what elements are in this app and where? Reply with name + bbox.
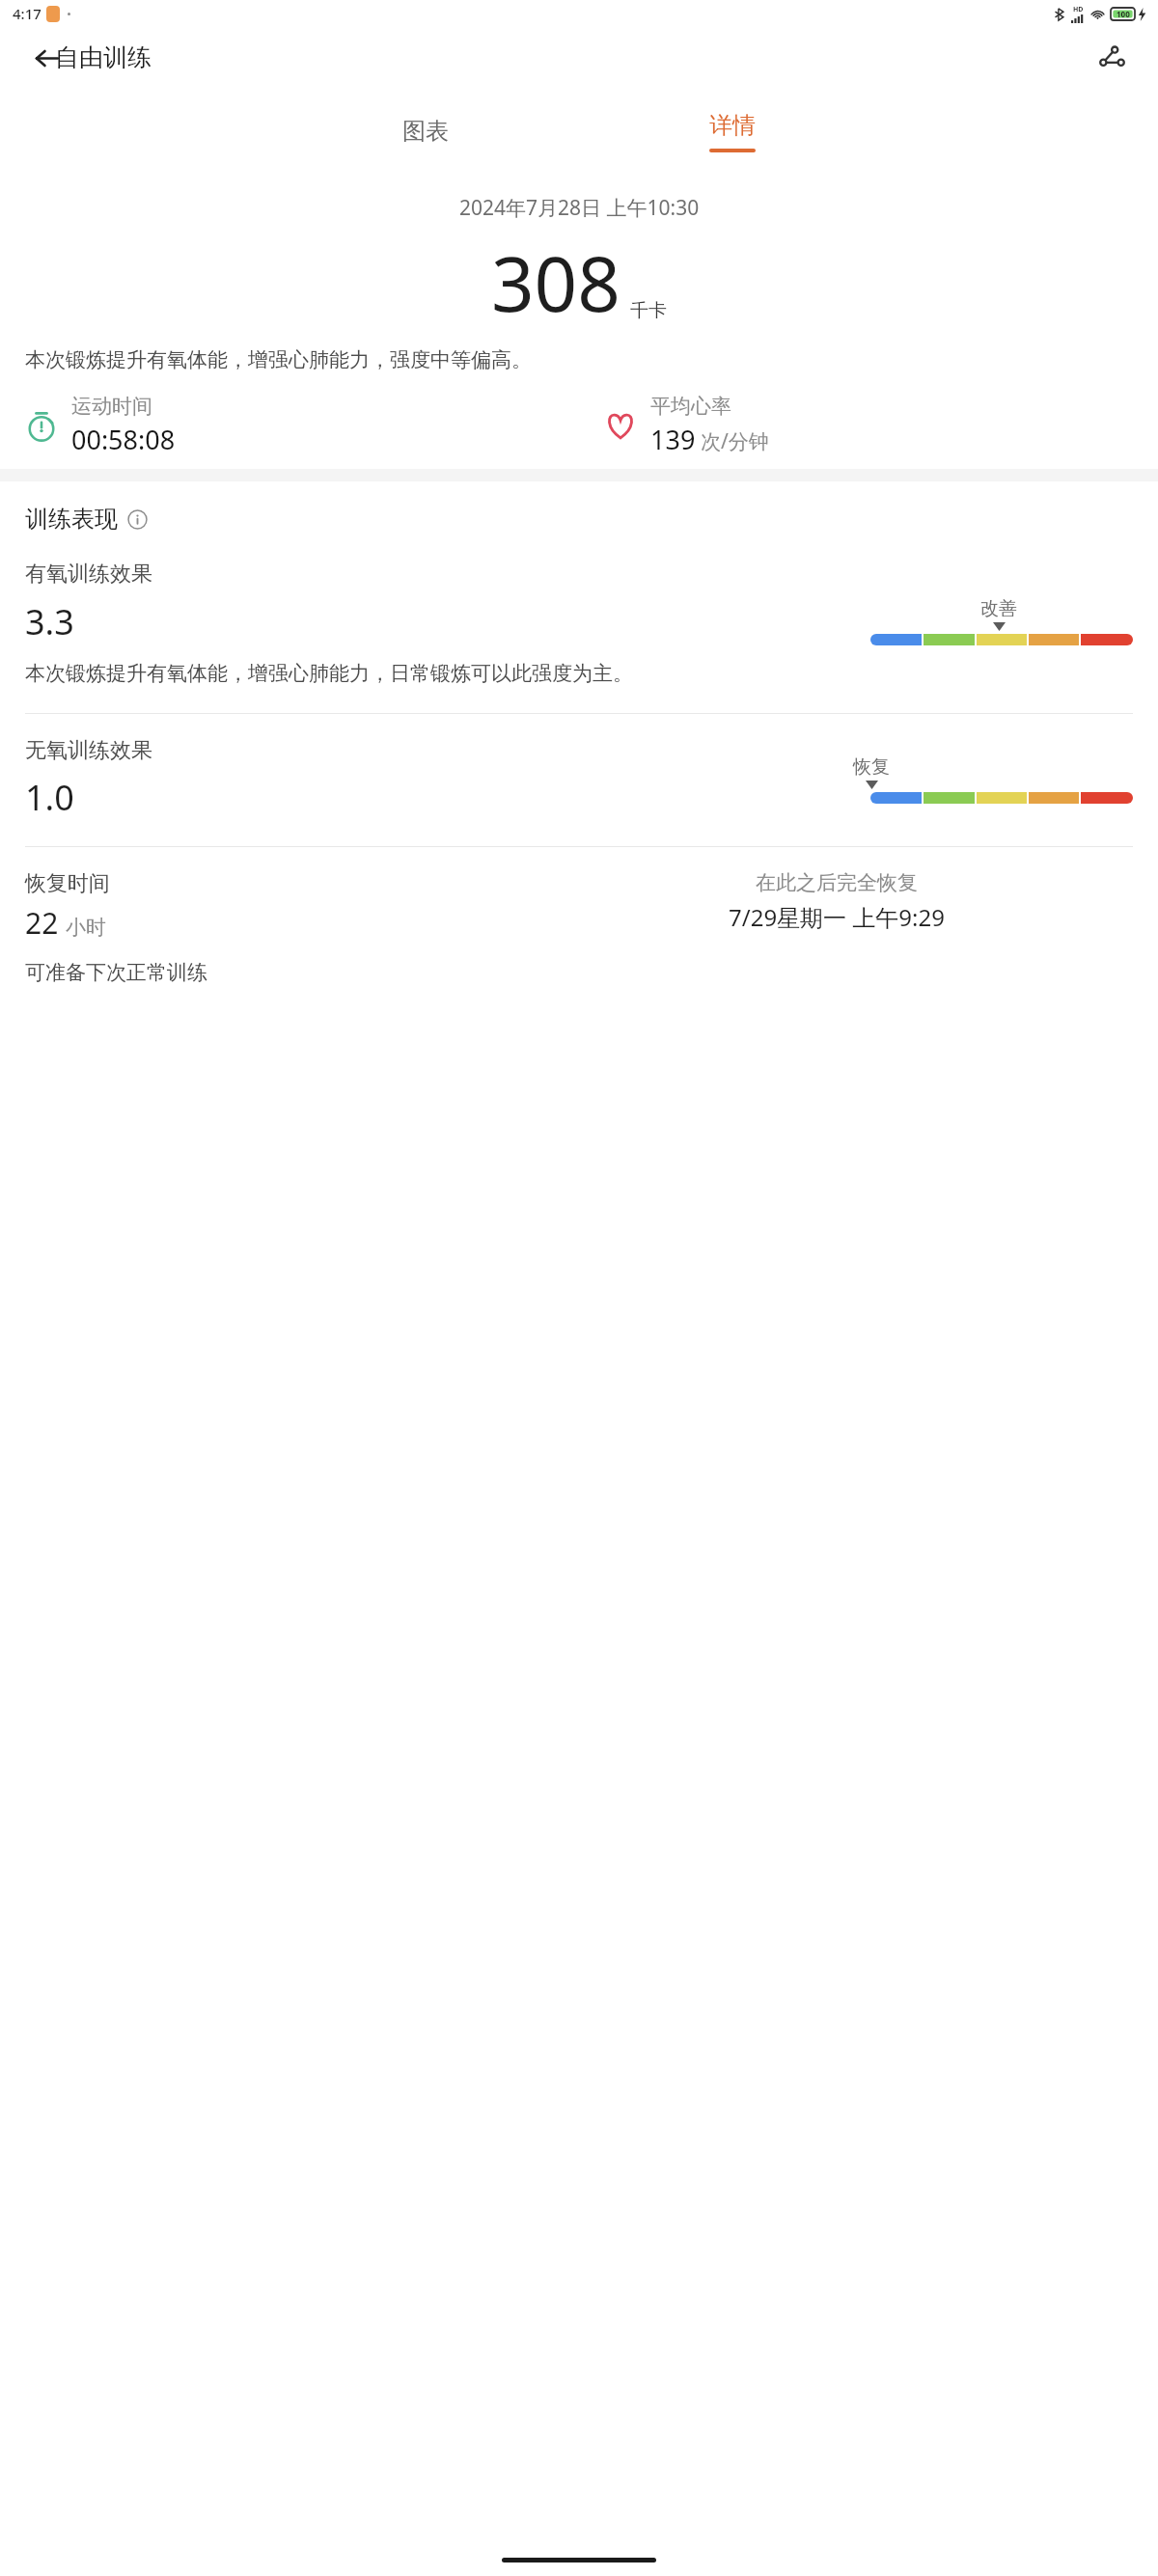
- button[interactable]: 训练表现: [25, 505, 148, 534]
- staticText: 100: [1117, 9, 1130, 19]
- staticText: 运动时间: [71, 394, 152, 419]
- button[interactable]: 详情: [579, 88, 1158, 175]
- staticText: 本次锻炼提升有氧体能，增强心肺能力，强度中等偏高。: [25, 347, 1133, 372]
- staticText: 详情: [709, 111, 756, 140]
- staticText: 平均心率: [650, 394, 731, 419]
- button[interactable]: Share: [1089, 35, 1135, 81]
- staticText: 训练表现: [25, 505, 118, 534]
- button[interactable]: Back: [25, 37, 68, 79]
- staticText: 自由训练: [55, 42, 152, 72]
- staticText: 图表: [402, 117, 449, 146]
- staticText: 7/29星期一 上午9:29: [729, 901, 945, 933]
- staticText: 1.0: [25, 774, 74, 821]
- staticText: 小时: [66, 915, 106, 940]
- staticText: 在此之后完全恢复: [756, 870, 918, 895]
- staticText: 恢复: [853, 755, 890, 779]
- button[interactable]: 运动时间: [25, 394, 579, 457]
- other: Info: [127, 509, 148, 530]
- button[interactable]: 图表: [0, 88, 579, 175]
- staticText: 次/分钟: [701, 427, 769, 455]
- staticText: 无氧训练效果: [25, 737, 152, 764]
- staticText: 改善: [980, 597, 1017, 620]
- staticText: 4:17: [13, 4, 41, 23]
- staticText: 恢复时间: [25, 870, 110, 897]
- staticText: 3.3: [25, 598, 74, 645]
- staticText: 308: [491, 232, 620, 334]
- staticText: HD: [1073, 5, 1084, 14]
- staticText: 可准备下次正常训练: [25, 960, 207, 985]
- staticText: 2024年7月28日 上午10:30: [459, 194, 700, 222]
- staticText: 139: [650, 422, 696, 457]
- staticText: 有氧训练效果: [25, 561, 152, 588]
- staticText: 22: [25, 903, 59, 943]
- staticText: 千卡: [630, 299, 667, 322]
- button[interactable]: 平均心率: [604, 394, 1158, 457]
- staticText: 00:58:08: [71, 422, 176, 457]
- staticText: 本次锻炼提升有氧体能，增强心肺能力，日常锻炼可以此强度为主。: [25, 661, 633, 686]
